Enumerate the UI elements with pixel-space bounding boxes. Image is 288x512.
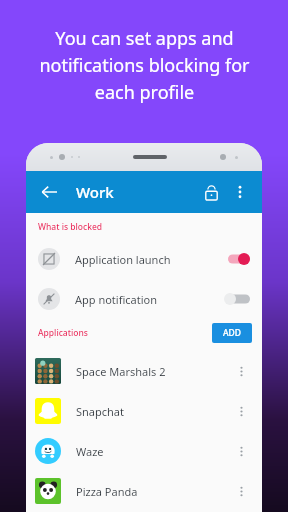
button[interactable]: ADD xyxy=(212,323,252,343)
button[interactable]: Snapchat xyxy=(26,391,262,431)
staticText: Snapchat xyxy=(76,404,124,419)
button[interactable]: Lock profile xyxy=(198,179,224,205)
staticText: Pizza Panda xyxy=(76,484,138,499)
button[interactable]: More options xyxy=(228,180,252,204)
button[interactable]: Waze xyxy=(26,431,262,471)
staticText: Work xyxy=(76,182,114,202)
button[interactable]: App notification xyxy=(26,279,262,319)
staticText: What is blocked xyxy=(38,221,103,233)
staticText: ADD xyxy=(223,327,241,339)
button[interactable]: Pizza Panda xyxy=(26,471,262,511)
staticText: Applications xyxy=(38,327,88,339)
button[interactable]: Back xyxy=(36,179,62,205)
button[interactable]: More options for Space Marshals 2 xyxy=(232,362,250,380)
staticText: You can set apps and notifications block… xyxy=(39,26,250,104)
button[interactable]: More options for Waze xyxy=(232,442,250,460)
button[interactable]: More options for Pizza Panda xyxy=(232,482,250,500)
button[interactable]: Application launch xyxy=(26,239,262,279)
staticText: App notification xyxy=(75,292,158,307)
staticText: Waze xyxy=(76,444,104,459)
button[interactable]: Space Marshals 2 xyxy=(26,351,262,391)
staticText: Space Marshals 2 xyxy=(76,364,166,379)
button[interactable]: More options for Snapchat xyxy=(232,402,250,420)
staticText: Application launch xyxy=(75,252,171,267)
button[interactable]: Enabled xyxy=(224,251,250,267)
button[interactable]: Disabled xyxy=(224,291,250,307)
